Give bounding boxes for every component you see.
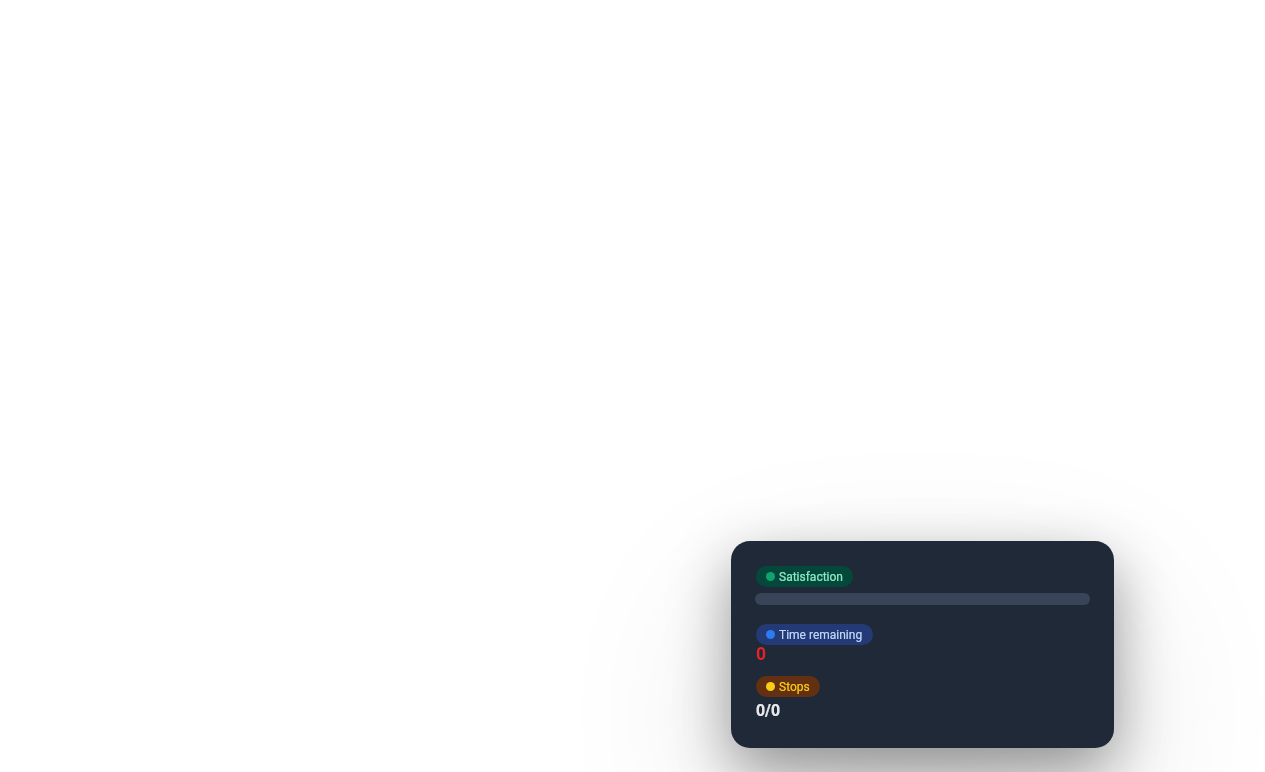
button[interactable]: Time remaining [756, 624, 873, 645]
staticText: Satisfaction [779, 570, 843, 584]
staticText: Stops [779, 680, 810, 694]
button[interactable]: Satisfaction [756, 566, 853, 587]
button[interactable]: Trip statistics card [731, 541, 1114, 748]
staticText: 0/0 [756, 701, 781, 720]
staticText: Time remaining [779, 628, 863, 642]
button[interactable]: Stops [756, 676, 820, 697]
staticText: 0 [756, 644, 767, 665]
